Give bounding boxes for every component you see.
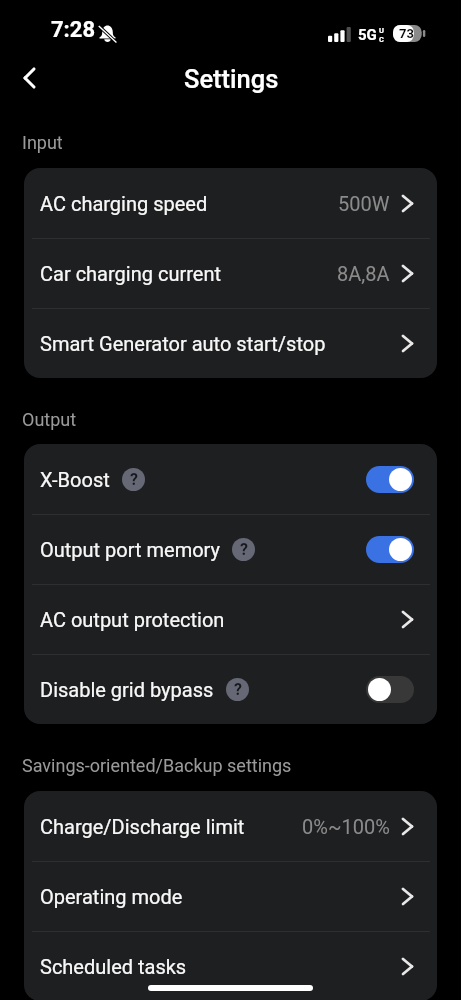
- button[interactable]: Back: [11, 60, 47, 96]
- staticText: Settings: [184, 64, 279, 94]
- staticText: C: [379, 35, 384, 44]
- staticText: U: [379, 26, 384, 35]
- button[interactable]: Smart Generator auto start/stop: [24, 308, 437, 378]
- button[interactable]: Switch off: [366, 676, 414, 703]
- staticText: Car charging current: [40, 262, 221, 285]
- button[interactable]: Output port memory: [24, 514, 437, 584]
- staticText: 7:28: [51, 17, 96, 43]
- staticText: 0%~100%: [302, 815, 390, 838]
- staticText: ?: [240, 540, 248, 559]
- button[interactable]: Operating mode: [24, 861, 437, 931]
- staticText: Disable grid bypass: [40, 678, 214, 701]
- staticText: Charge/Discharge limit: [40, 815, 245, 838]
- button[interactable]: Switch on: [366, 536, 414, 563]
- staticText: 500W: [338, 192, 390, 215]
- button[interactable]: Switch on: [366, 466, 414, 493]
- staticText: ?: [234, 680, 242, 699]
- staticText: Smart Generator auto start/stop: [40, 332, 326, 355]
- staticText: Output: [22, 409, 77, 430]
- staticText: 5G: [358, 26, 377, 44]
- staticText: X-Boost: [40, 468, 110, 491]
- staticText: Input: [22, 132, 63, 153]
- button[interactable]: X-Boost: [24, 444, 437, 514]
- staticText: AC charging speed: [40, 192, 208, 215]
- staticText: AC output protection: [40, 608, 225, 631]
- button[interactable]: AC charging speed: [24, 168, 437, 238]
- staticText: Output port memory: [40, 538, 220, 561]
- button[interactable]: Charge/Discharge limit: [24, 791, 437, 861]
- staticText: Operating mode: [40, 885, 183, 908]
- button[interactable]: Car charging current: [24, 238, 437, 308]
- button[interactable]: Disable grid bypass: [24, 654, 437, 724]
- button[interactable]: AC output protection: [24, 584, 437, 654]
- staticText: 73: [399, 26, 414, 41]
- staticText: ?: [130, 470, 138, 489]
- staticText: Savings-oriented/Backup settings: [22, 755, 292, 776]
- staticText: 8A,8A: [337, 262, 390, 285]
- button[interactable]: Scheduled tasks: [24, 931, 437, 1000]
- staticText: Scheduled tasks: [40, 955, 187, 978]
